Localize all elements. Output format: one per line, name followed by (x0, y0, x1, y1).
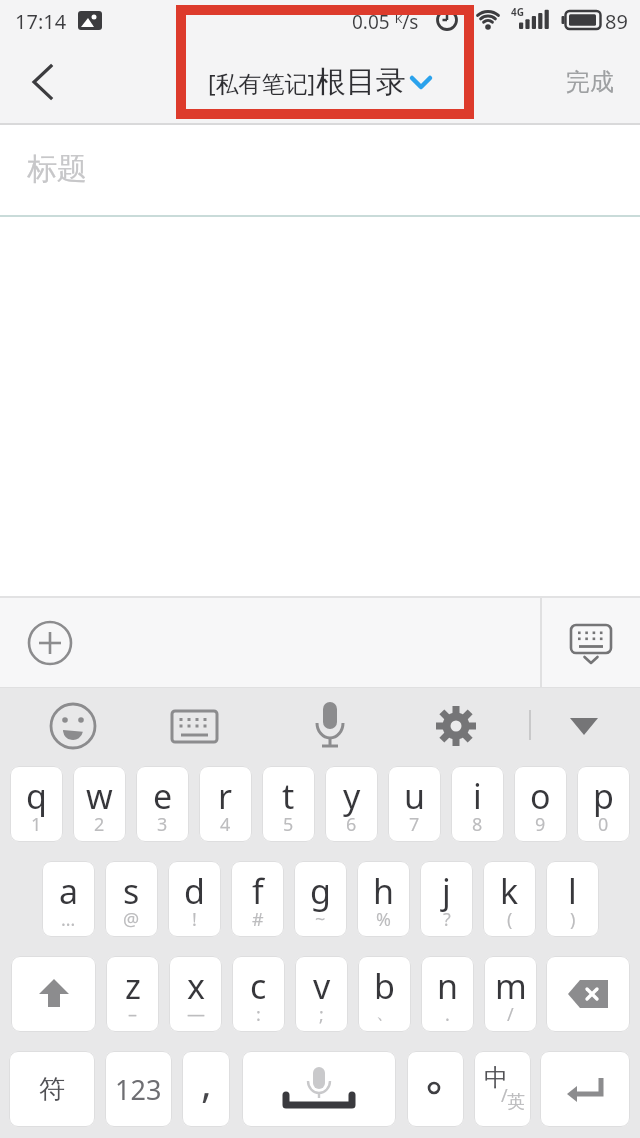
staticText: d (184, 868, 205, 914)
button[interactable] (242, 1051, 396, 1127)
staticText: y (343, 773, 361, 819)
button[interactable] (562, 612, 620, 674)
button[interactable] (11, 956, 96, 1032)
staticText: … (61, 907, 76, 932)
staticText: 4G (511, 5, 524, 19)
staticText: k (500, 868, 519, 914)
button[interactable] (428, 698, 484, 754)
staticText: n (437, 963, 459, 1009)
staticText: 17:14 (15, 8, 67, 35)
button[interactable]: r (199, 766, 252, 842)
staticText: / (507, 1002, 514, 1027)
button[interactable] (14, 56, 70, 108)
staticText: c (250, 963, 267, 1009)
staticText: x (187, 963, 205, 1009)
staticText: 标题 (27, 150, 87, 188)
staticText: 89 (605, 8, 628, 35)
button[interactable]: 符 (9, 1051, 95, 1127)
button[interactable]: k (483, 861, 536, 937)
staticText: t (282, 773, 295, 819)
button[interactable] (407, 1051, 464, 1127)
button[interactable]: w (73, 766, 126, 842)
button[interactable]: 123 (105, 1051, 172, 1127)
button[interactable]: j (420, 861, 473, 937)
button[interactable]: t (262, 766, 315, 842)
staticText: g (310, 868, 331, 914)
staticText: 0 (598, 812, 609, 837)
button[interactable] (44, 698, 102, 754)
staticText: 6 (346, 812, 357, 837)
staticText: # (252, 907, 264, 932)
staticText: 9 (535, 812, 546, 837)
staticText: ? (443, 907, 451, 932)
button[interactable]: v (295, 956, 348, 1032)
button[interactable] (302, 696, 358, 756)
button[interactable]: [私有笔记] (0, 44, 640, 120)
button[interactable]: z (106, 956, 159, 1032)
staticText: , (201, 1055, 212, 1109)
staticText: . (445, 1002, 450, 1027)
button[interactable]: h (357, 861, 410, 937)
staticText: 根目录 (316, 63, 406, 101)
staticText: 完成 (566, 67, 614, 97)
button[interactable] (166, 698, 224, 754)
staticText: : (256, 1002, 261, 1027)
button[interactable]: c (232, 956, 285, 1032)
staticText: 英 (507, 1091, 525, 1114)
button[interactable] (546, 956, 630, 1032)
button[interactable] (556, 698, 612, 754)
staticText: i (473, 773, 482, 819)
button[interactable]: e (136, 766, 189, 842)
staticText: ) (570, 907, 576, 932)
staticText: o (530, 773, 551, 819)
button[interactable]: b (358, 956, 411, 1032)
staticText: f (252, 868, 264, 914)
staticText: s (123, 868, 140, 914)
button[interactable]: a (42, 861, 95, 937)
button[interactable]: p (577, 766, 630, 842)
staticText: e (153, 773, 173, 819)
staticText: a (59, 868, 79, 914)
button[interactable]: n (421, 956, 474, 1032)
staticText: u (404, 773, 426, 819)
staticText: ; (319, 1002, 324, 1027)
staticText: ~ (315, 907, 326, 932)
staticText: — (187, 1002, 205, 1027)
button[interactable]: d (168, 861, 221, 937)
staticText: / (501, 1083, 508, 1108)
button[interactable] (22, 615, 78, 671)
staticText: b (374, 963, 395, 1009)
staticText: 0.05 ᴷ/s (352, 9, 419, 35)
button[interactable]: y (325, 766, 378, 842)
staticText: 123 (115, 1071, 162, 1108)
staticText: 5 (283, 812, 294, 837)
button[interactable]: m (484, 956, 537, 1032)
staticText: @ (123, 907, 140, 932)
staticText: 8 (472, 812, 483, 837)
staticText: 7 (409, 812, 420, 837)
button[interactable] (540, 1051, 630, 1127)
button[interactable]: , (182, 1051, 230, 1127)
staticText: % (376, 907, 391, 932)
staticText: 、 (376, 1002, 394, 1025)
button[interactable]: i (451, 766, 504, 842)
button[interactable]: o (514, 766, 567, 842)
button[interactable]: l (546, 861, 599, 937)
button[interactable]: u (388, 766, 441, 842)
button[interactable]: 完成 (550, 56, 630, 108)
staticText: 4 (220, 812, 231, 837)
button[interactable]: g (294, 861, 347, 937)
staticText: 2 (94, 812, 105, 837)
button[interactable]: 中 (474, 1051, 531, 1127)
staticText: ( (507, 907, 513, 932)
button[interactable]: x (169, 956, 222, 1032)
button[interactable]: f (231, 861, 284, 937)
staticText: 中 (484, 1063, 508, 1093)
button[interactable]: q (10, 766, 63, 842)
staticText: p (593, 773, 614, 819)
staticText: 3 (157, 812, 168, 837)
button[interactable]: s (105, 861, 158, 937)
staticText: q (26, 773, 47, 819)
staticText: – (128, 1002, 137, 1027)
staticText: z (125, 963, 141, 1009)
